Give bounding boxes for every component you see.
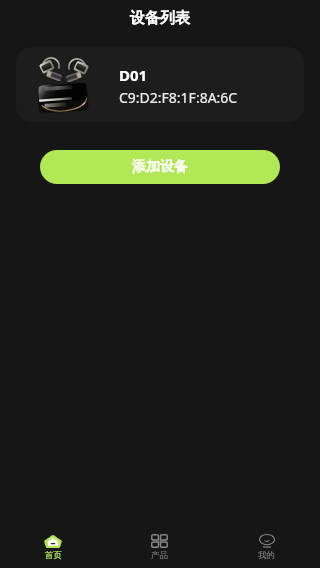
button[interactable]: D01 <box>16 47 304 122</box>
button[interactable]: 添加设备 <box>40 150 280 184</box>
button[interactable]: 我的 <box>213 521 320 563</box>
staticText: 添加设备 <box>132 158 188 176</box>
button[interactable]: 首页 <box>0 522 106 563</box>
button[interactable]: 产品 <box>106 521 213 563</box>
staticText: C9:D2:F8:1F:8A:6C <box>119 88 238 107</box>
staticText: 产品 <box>151 550 168 561</box>
staticText: 我的 <box>258 550 275 561</box>
staticText: 首页 <box>45 550 62 561</box>
staticText: D01 <box>119 65 148 85</box>
staticText: 设备列表 <box>130 9 190 28</box>
